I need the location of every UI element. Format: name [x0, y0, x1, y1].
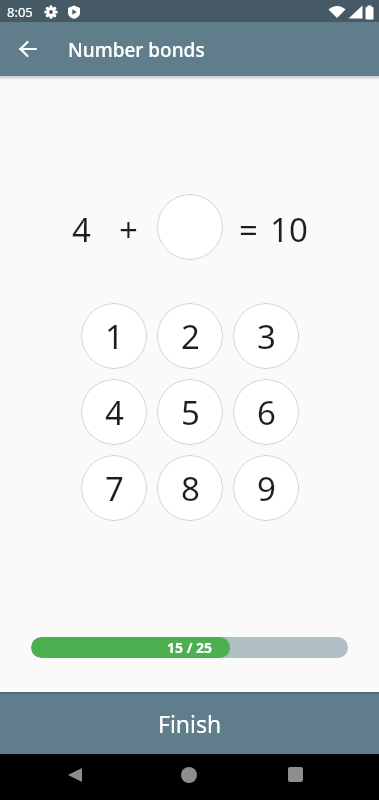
staticText: 5: [181, 390, 200, 435]
button[interactable]: 1: [81, 303, 147, 369]
button[interactable]: Finish: [0, 692, 379, 754]
button[interactable]: 8: [157, 455, 223, 521]
staticText: Number bonds: [68, 37, 205, 63]
button[interactable]: 6: [233, 379, 299, 445]
button[interactable]: 7: [81, 455, 147, 521]
staticText: 4: [72, 207, 91, 247]
staticText: 3: [257, 314, 276, 359]
button[interactable]: 2: [157, 303, 223, 369]
button[interactable]: [12, 33, 44, 65]
button[interactable]: [68, 768, 82, 782]
staticText: +: [119, 207, 138, 247]
staticText: 7: [105, 466, 124, 511]
button[interactable]: 3: [233, 303, 299, 369]
staticText: 6: [257, 390, 276, 435]
staticText: 10: [270, 207, 308, 247]
staticText: Finish: [158, 708, 222, 739]
button[interactable]: [157, 194, 223, 260]
staticText: 2: [181, 314, 200, 359]
staticText: 9: [257, 466, 276, 511]
staticText: 4: [105, 390, 124, 435]
staticText: 15 / 25: [167, 638, 213, 657]
staticText: =: [239, 207, 258, 247]
staticText: 8:05: [7, 3, 33, 21]
staticText: 8: [181, 466, 200, 511]
staticText: 1: [105, 314, 124, 359]
button[interactable]: 4: [81, 379, 147, 445]
button[interactable]: 5: [157, 379, 223, 445]
button[interactable]: 9: [233, 455, 299, 521]
button[interactable]: [181, 767, 197, 783]
button[interactable]: [288, 767, 303, 782]
